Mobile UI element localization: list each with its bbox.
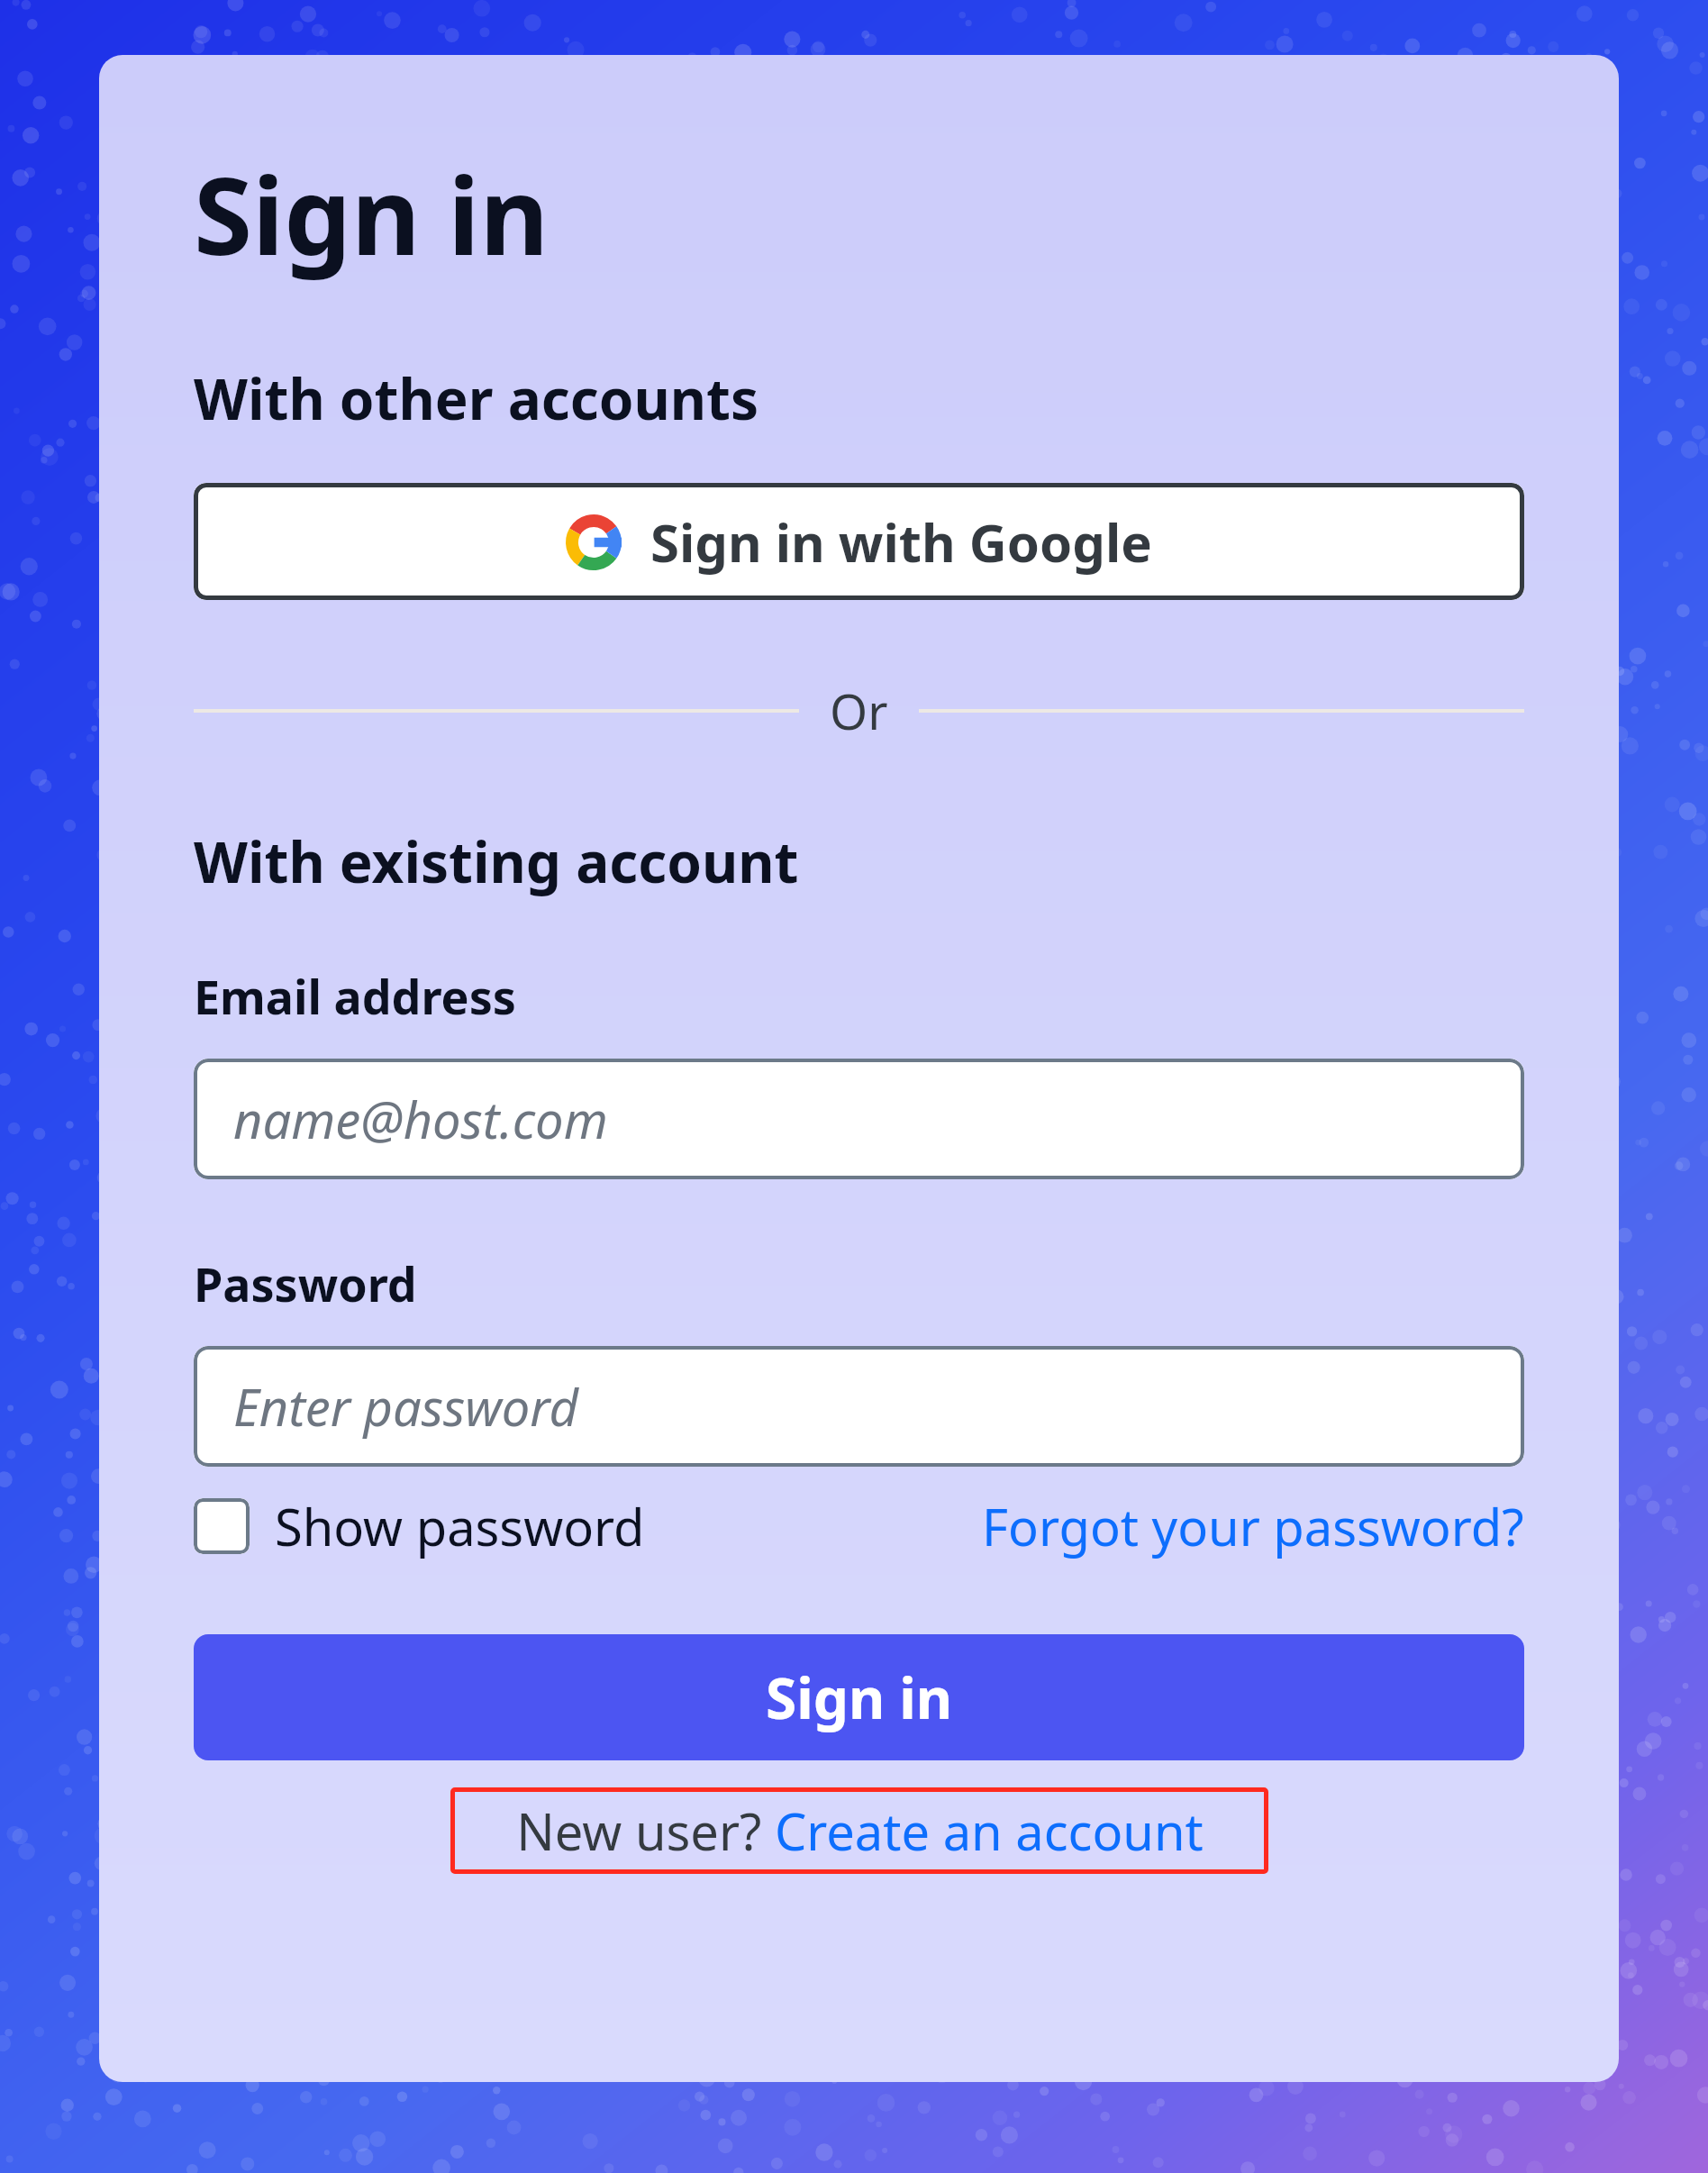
staticText: Show password (275, 1492, 645, 1560)
staticText: Or (830, 677, 888, 744)
staticText: Enter password (233, 1372, 578, 1441)
button[interactable]: Enter password (194, 1346, 1524, 1467)
button[interactable]: Sign in with Google (194, 483, 1524, 600)
staticText: With existing account (194, 823, 799, 899)
staticText: Sign in with Google (650, 506, 1152, 577)
staticText: Password (194, 1251, 417, 1315)
button[interactable]: Show password (194, 1492, 645, 1560)
staticText: New user? Create an account (516, 1796, 1204, 1865)
staticText: Sign in (766, 1659, 953, 1735)
staticText: Forgot your password? (982, 1492, 1524, 1560)
button[interactable]: name@host.com (194, 1059, 1524, 1179)
button[interactable]: New user? Create an account (450, 1787, 1268, 1874)
button[interactable]: Sign in (194, 1634, 1524, 1760)
staticText: With other accounts (194, 360, 759, 436)
staticText: Sign in (194, 141, 550, 286)
button[interactable]: Forgot your password? (982, 1492, 1524, 1560)
staticText: name@host.com (233, 1085, 608, 1153)
staticText: Email address (194, 964, 516, 1028)
